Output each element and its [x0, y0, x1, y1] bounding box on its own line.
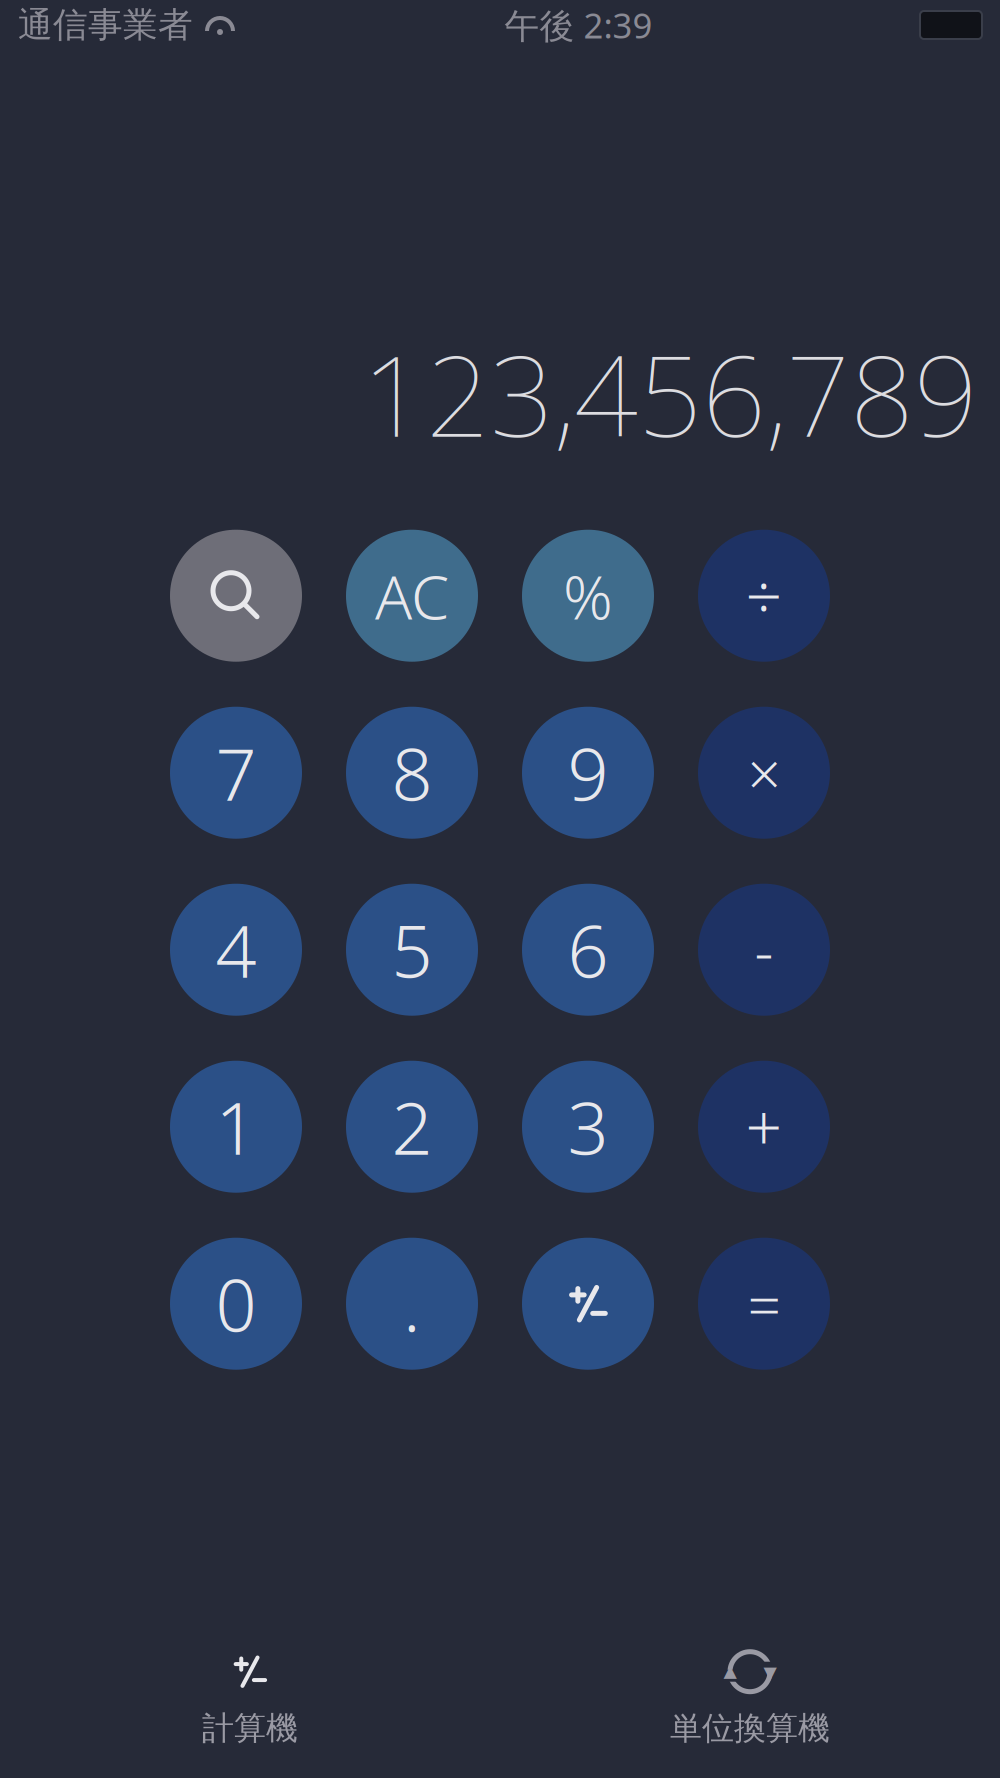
staticText: =	[747, 1265, 780, 1343]
staticText: 3	[567, 1079, 608, 1174]
staticText: .	[403, 1256, 421, 1351]
button[interactable]: 7	[170, 707, 302, 839]
staticText: 9	[567, 725, 608, 820]
button[interactable]: 5	[346, 884, 478, 1016]
button[interactable]: 4	[170, 884, 302, 1016]
staticText: +	[745, 1084, 782, 1169]
button[interactable]: %	[522, 530, 654, 662]
button[interactable]: +	[698, 1061, 830, 1193]
staticText: 単位換算機	[670, 1709, 830, 1748]
staticText: -	[754, 911, 773, 989]
staticText: 5	[391, 902, 432, 997]
button[interactable]	[170, 530, 302, 662]
staticText: ×	[747, 734, 780, 812]
button[interactable]	[522, 1238, 654, 1370]
button[interactable]: 計算機	[0, 1639, 500, 1754]
staticText: 0	[215, 1256, 256, 1351]
button[interactable]: ×	[698, 707, 830, 839]
button[interactable]: 2	[346, 1061, 478, 1193]
button[interactable]: -	[698, 884, 830, 1016]
button[interactable]: AC	[346, 530, 478, 662]
button[interactable]: ÷	[698, 530, 830, 662]
staticText: ▼	[763, 1663, 776, 1683]
staticText: 8	[391, 725, 432, 820]
staticText: AC	[375, 555, 449, 636]
button[interactable]: ▲	[500, 1639, 1000, 1754]
button[interactable]: =	[698, 1238, 830, 1370]
button[interactable]: 0	[170, 1238, 302, 1370]
button[interactable]: 9	[522, 707, 654, 839]
button[interactable]: 6	[522, 884, 654, 1016]
staticText: 通信事業者	[18, 4, 193, 46]
button[interactable]: 3	[522, 1061, 654, 1193]
staticText: ▲	[723, 1661, 736, 1681]
button[interactable]: .	[346, 1238, 478, 1370]
staticText: 午後 2:39	[504, 2, 652, 48]
staticText: 6	[567, 902, 608, 997]
staticText: 1	[215, 1079, 256, 1174]
staticText: ÷	[745, 553, 782, 638]
staticText: 123,456,789	[362, 319, 978, 468]
staticText: %	[563, 555, 613, 636]
staticText: 計算機	[202, 1709, 298, 1748]
staticText: 2	[391, 1079, 432, 1174]
staticText: 4	[215, 902, 256, 997]
staticText: 7	[215, 725, 256, 820]
button[interactable]: 1	[170, 1061, 302, 1193]
button[interactable]: 8	[346, 707, 478, 839]
